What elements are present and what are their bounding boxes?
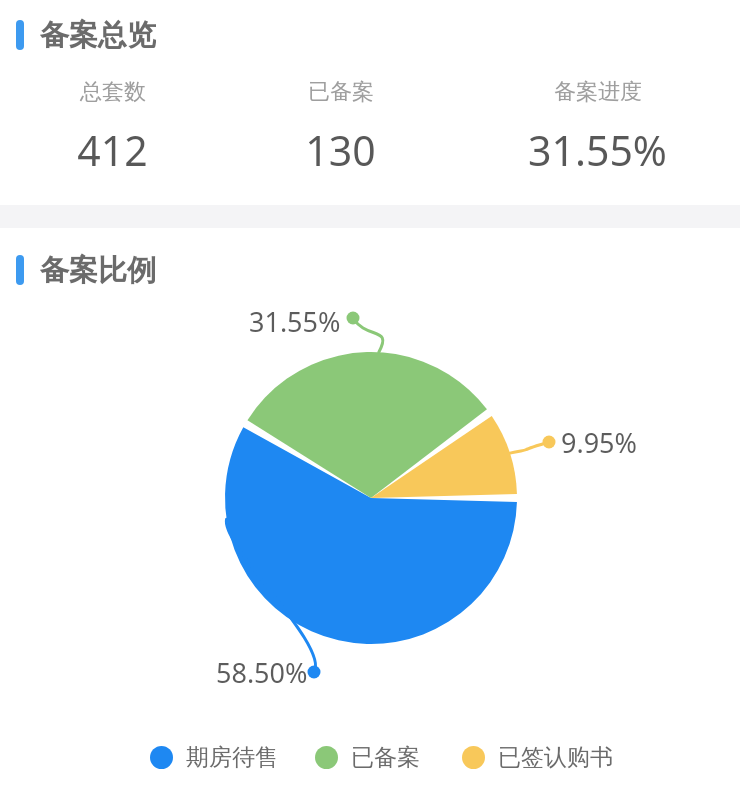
staticText: 备案总览 (40, 17, 156, 53)
button[interactable]: 备案进度 (497, 78, 697, 178)
staticText: 9.95% (561, 424, 638, 461)
button[interactable]: 已签认购书 (462, 739, 613, 775)
staticText: 31.55% (249, 303, 341, 340)
staticText: 已备案 (351, 743, 420, 772)
staticText: 已备案 (308, 78, 374, 106)
staticText: 412 (77, 122, 148, 178)
staticText: 58.50% (216, 654, 308, 691)
staticText: 130 (305, 122, 376, 178)
staticText: 备案比例 (40, 252, 156, 288)
other: 备案比例饼图 (0, 0, 740, 802)
button[interactable]: 已备案 (240, 78, 440, 178)
staticText: 已签认购书 (498, 743, 613, 772)
button[interactable]: 总套数 (12, 78, 212, 178)
button[interactable]: 备案比例 (16, 252, 156, 288)
staticText: 备案进度 (554, 78, 642, 106)
staticText: 总套数 (80, 78, 146, 106)
staticText: 期房待售 (186, 743, 278, 772)
button[interactable]: 已备案 (315, 739, 420, 775)
staticText: 31.55% (528, 122, 667, 178)
button[interactable]: 期房待售 (150, 739, 278, 775)
button[interactable]: 备案总览 (16, 17, 156, 53)
